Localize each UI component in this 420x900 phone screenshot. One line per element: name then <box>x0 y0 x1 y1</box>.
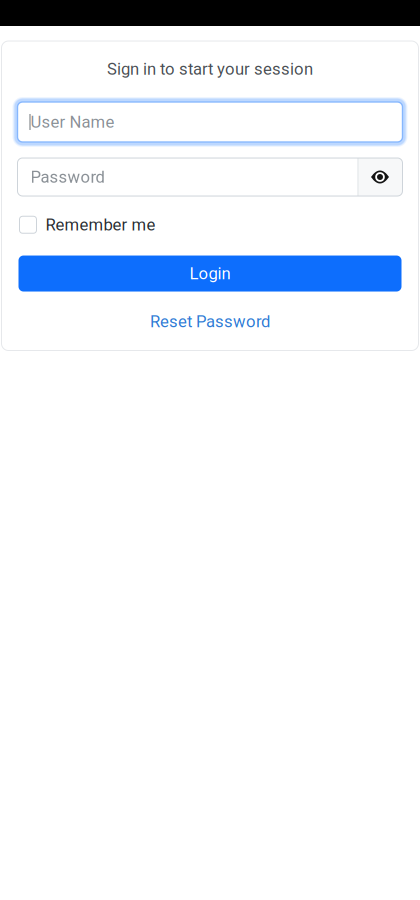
staticText: Remember me <box>45 215 155 234</box>
button[interactable]: Remember me <box>19 212 155 237</box>
button[interactable]: Show password <box>357 158 402 196</box>
staticText: Sign in to start your session <box>107 59 313 79</box>
button[interactable]: Login <box>18 255 401 291</box>
staticText: Login <box>189 264 230 283</box>
staticText: User Name <box>30 112 114 132</box>
staticText: Reset Password <box>150 312 270 331</box>
staticText: Password <box>30 167 104 187</box>
button[interactable]: Reset Password <box>1 308 418 334</box>
